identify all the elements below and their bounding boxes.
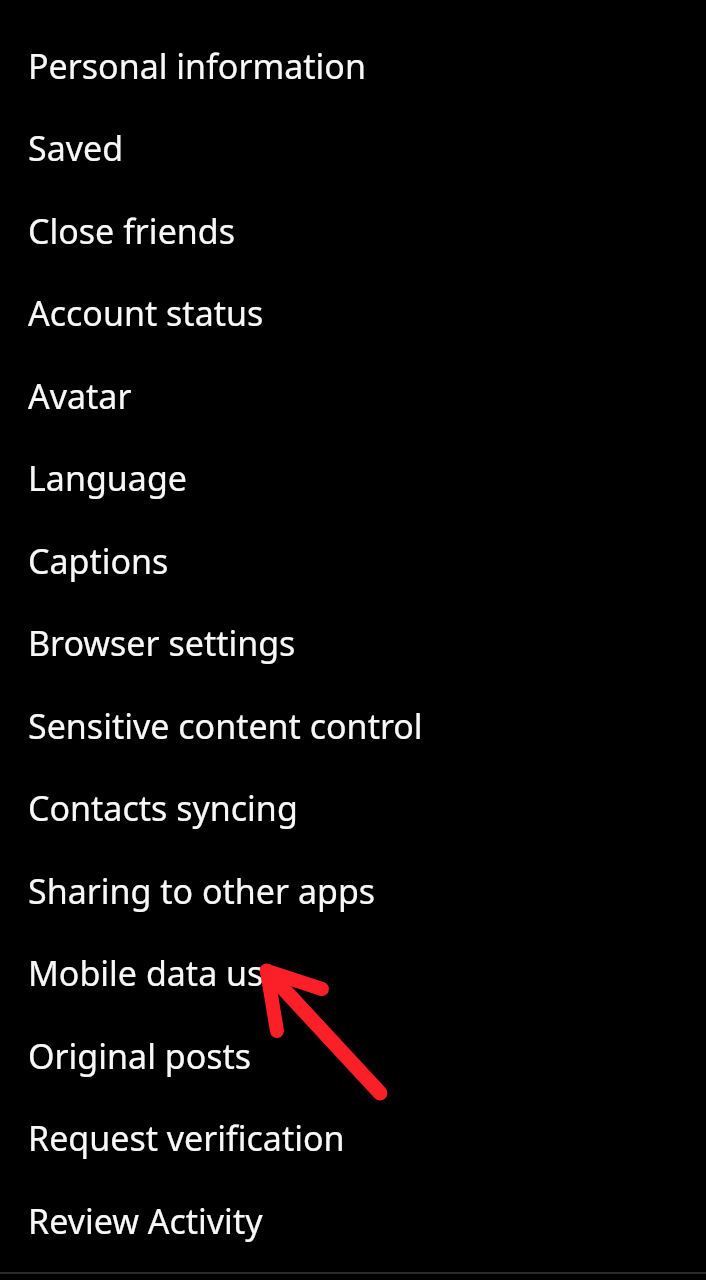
staticText: Personal information (28, 43, 366, 89)
button[interactable]: Contacts syncing (0, 766, 706, 849)
button[interactable]: Sharing to other apps (0, 849, 706, 932)
staticText: Contacts syncing (28, 785, 298, 831)
staticText: Language (28, 455, 187, 501)
button[interactable]: Close friends (0, 189, 706, 272)
staticText: Request verification (28, 1115, 345, 1161)
other: Annotation arrow pointing to Mobile data… (0, 0, 706, 1280)
button[interactable]: Language (0, 436, 706, 519)
staticText: Review Activity (28, 1198, 263, 1244)
staticText: Mobile data use (28, 950, 283, 996)
staticText: Browser settings (28, 620, 296, 666)
staticText: Captions (28, 538, 169, 584)
button[interactable]: Mobile data use (0, 931, 706, 1014)
button[interactable]: Personal information (0, 24, 706, 107)
button[interactable]: Review Activity (0, 1179, 706, 1262)
button[interactable]: Sensitive content control (0, 684, 706, 767)
staticText: Close friends (28, 208, 236, 254)
staticText: Sensitive content control (28, 703, 423, 749)
button[interactable]: Captions (0, 519, 706, 602)
button[interactable]: Original posts (0, 1014, 706, 1097)
button[interactable]: Avatar (0, 354, 706, 437)
staticText: Avatar (28, 373, 132, 419)
button[interactable]: Request verification (0, 1096, 706, 1179)
button[interactable]: Account status (0, 271, 706, 354)
staticText: Account status (28, 290, 264, 336)
staticText: Original posts (28, 1033, 252, 1079)
staticText: Saved (28, 125, 124, 171)
staticText: Sharing to other apps (28, 868, 376, 914)
button[interactable]: Browser settings (0, 601, 706, 684)
button[interactable]: Saved (0, 106, 706, 189)
